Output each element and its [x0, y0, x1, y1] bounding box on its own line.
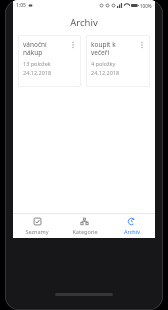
button[interactable]: Seznamy [13, 214, 61, 238]
staticText: vánoční nákup [23, 40, 68, 57]
staticText: 1:05 [16, 2, 26, 9]
staticText: 100% [140, 3, 152, 9]
staticText: Archiv [124, 228, 140, 235]
staticText: 13 položek [23, 60, 51, 67]
button[interactable]: More options [137, 40, 147, 50]
staticText: Kategorie [72, 228, 98, 235]
button[interactable]: Kategorie [61, 214, 108, 238]
staticText: koupit k večeři [91, 40, 137, 57]
staticText: Seznamy [25, 228, 49, 235]
button[interactable]: Archiv [108, 214, 155, 238]
staticText: 24.12.2018 [23, 69, 52, 76]
button[interactable]: koupit k večeři [86, 35, 150, 87]
staticText: 24.12.2018 [91, 69, 120, 76]
staticText: Archiv [70, 16, 98, 29]
staticText: 4 položky [91, 60, 116, 67]
button[interactable]: More options [68, 40, 78, 50]
button[interactable]: vánoční nákup [18, 35, 81, 87]
